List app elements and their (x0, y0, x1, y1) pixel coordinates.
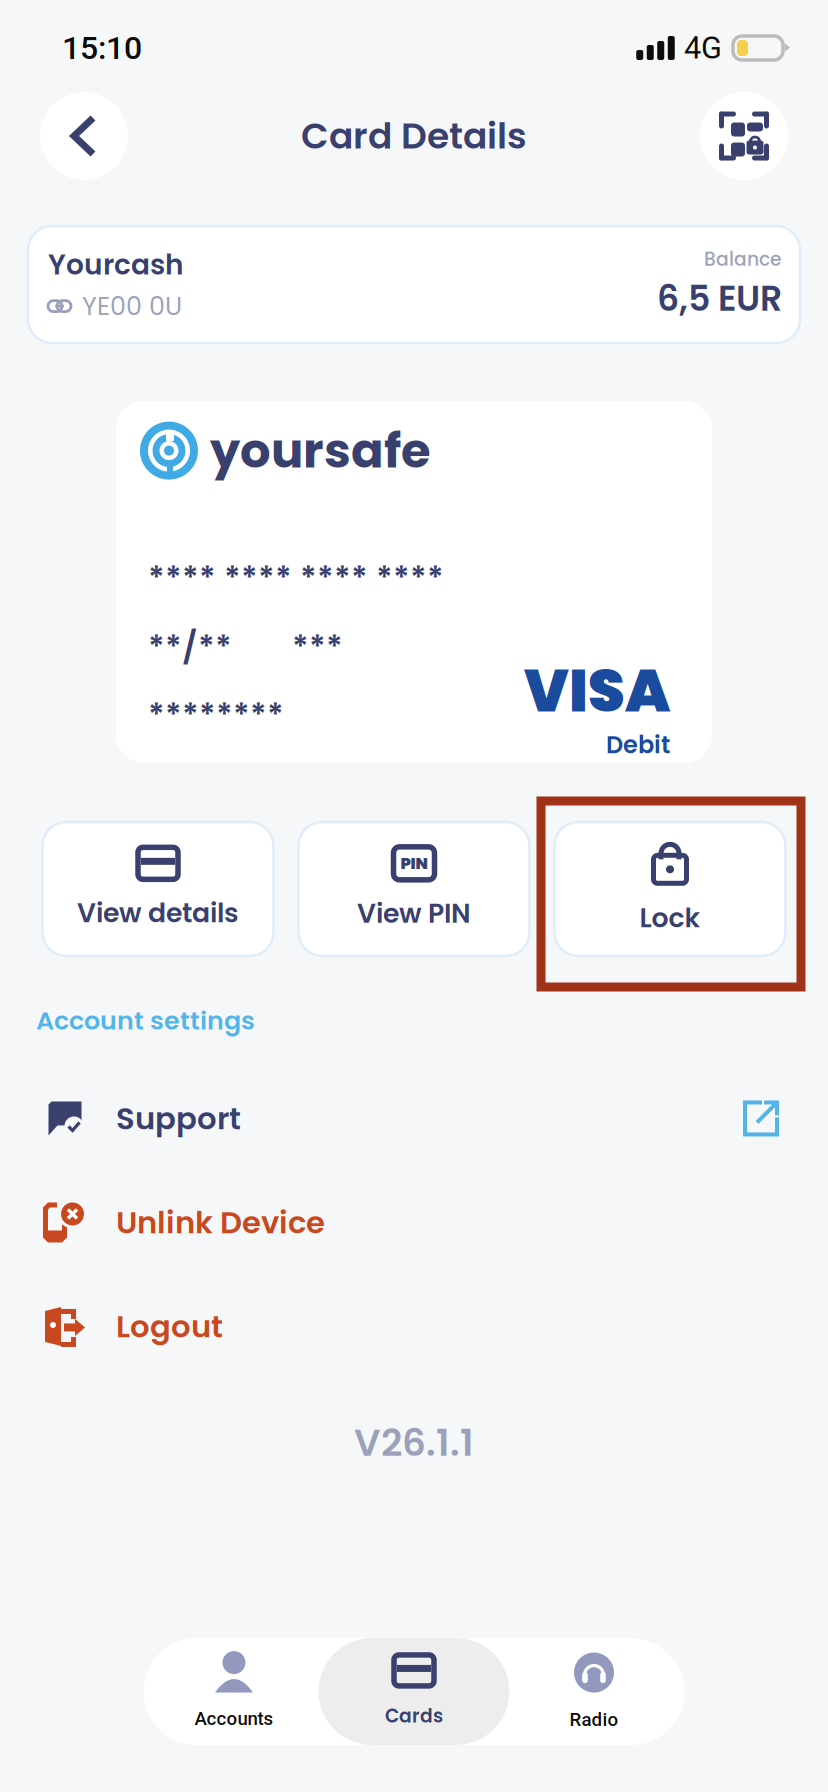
button[interactable]: Logout (0, 1274, 828, 1378)
staticText: View PIN (357, 895, 471, 932)
staticText: Logout (116, 1305, 223, 1348)
staticText: Balance (704, 246, 782, 272)
staticText: Cards (385, 1703, 443, 1729)
staticText: 4G (684, 30, 722, 66)
staticText: **** **** **** **** (148, 556, 444, 601)
staticText: VISA (524, 650, 670, 732)
button[interactable]: Radio (504, 1638, 684, 1745)
staticText: Account settings (36, 1003, 255, 1038)
staticText: *** (292, 625, 343, 670)
staticText: Radio (569, 1709, 618, 1730)
button[interactable]: Unlink Device (0, 1170, 828, 1274)
button[interactable]: Cards (324, 1638, 504, 1745)
staticText: Card Details (301, 111, 527, 161)
button[interactable]: Accounts (144, 1638, 324, 1745)
staticText: **/** (148, 625, 232, 670)
button[interactable]: Lock (554, 822, 785, 956)
staticText: YE00 0U (82, 288, 182, 324)
staticText: Debit (606, 728, 670, 762)
button[interactable]: View details (42, 822, 273, 956)
button[interactable]: Back (40, 92, 128, 180)
staticText: V26.1.1 (354, 1416, 474, 1469)
staticText: 15:10 (62, 29, 142, 67)
staticText: 6,5 EUR (657, 274, 782, 323)
staticText: yoursafe (210, 417, 431, 484)
button[interactable]: PIN (298, 822, 529, 956)
staticText: Support (116, 1097, 241, 1140)
staticText: Lock (639, 899, 700, 937)
staticText: ******** (148, 693, 284, 738)
staticText: View details (77, 894, 239, 932)
staticText: PIN (400, 852, 427, 874)
staticText: Accounts (194, 1708, 273, 1729)
staticText: Yourcash (48, 245, 184, 284)
staticText: Unlink Device (116, 1201, 325, 1244)
button[interactable]: Support (0, 1066, 828, 1170)
button[interactable]: Scan card (700, 92, 788, 180)
